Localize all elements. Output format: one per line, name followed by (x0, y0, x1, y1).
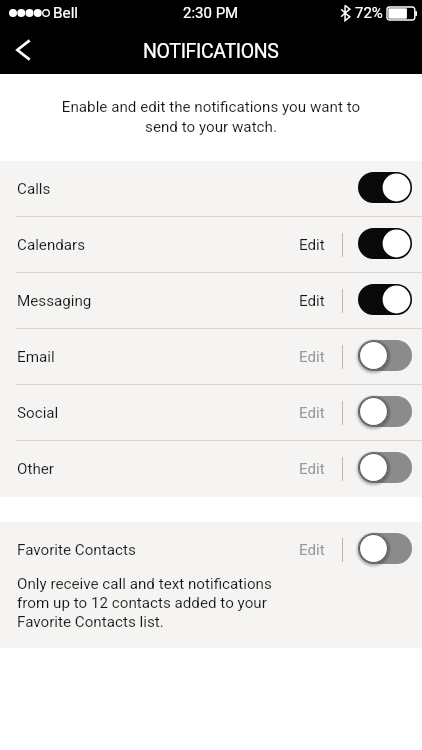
staticText: Favorite Contacts (17, 541, 136, 559)
staticText: 72% (355, 4, 383, 22)
staticText: NOTIFICATIONS (143, 40, 279, 63)
button[interactable]: Calendars (0, 217, 422, 273)
button[interactable]: Edit (293, 273, 331, 329)
button[interactable]: Edit (293, 441, 331, 497)
staticText: Only receive call and text notifications… (17, 575, 272, 631)
button[interactable]: Favorite Contacts notifications off (358, 533, 412, 564)
button[interactable]: Messaging (0, 273, 422, 329)
button[interactable]: Social notifications off (358, 396, 412, 427)
staticText: Other (17, 460, 54, 478)
staticText: Bell (53, 4, 79, 22)
button[interactable]: Edit (293, 217, 331, 273)
staticText: Edit (299, 460, 325, 478)
button[interactable]: Calendars notifications on (358, 228, 412, 259)
button[interactable]: Edit (293, 329, 331, 385)
button[interactable]: Other (0, 441, 422, 497)
staticText: 2:30 PM (183, 4, 239, 22)
staticText: Edit (299, 404, 325, 422)
button[interactable]: Email (0, 329, 422, 385)
button[interactable]: Calls notifications on (358, 172, 412, 203)
button[interactable]: Social (0, 385, 422, 441)
staticText: Enable and edit the notifications you wa… (16, 98, 406, 136)
staticText: Edit (299, 236, 325, 254)
button[interactable]: Favorite Contacts (0, 522, 422, 578)
button[interactable]: Email notifications off (358, 340, 412, 371)
staticText: Email (17, 348, 55, 366)
staticText: Calls (17, 180, 51, 198)
staticText: Social (17, 404, 59, 422)
staticText: Edit (299, 292, 325, 310)
staticText: Calendars (17, 236, 86, 254)
staticText: Messaging (17, 292, 92, 310)
staticText: Edit (299, 541, 325, 559)
button[interactable]: Messaging notifications on (358, 284, 412, 315)
staticText: Edit (299, 348, 325, 366)
button[interactable]: Other notifications off (358, 452, 412, 483)
button[interactable]: Edit (293, 522, 331, 578)
button[interactable]: Calls (0, 161, 422, 217)
button[interactable]: Back (0, 26, 46, 72)
button[interactable]: Edit (293, 385, 331, 441)
